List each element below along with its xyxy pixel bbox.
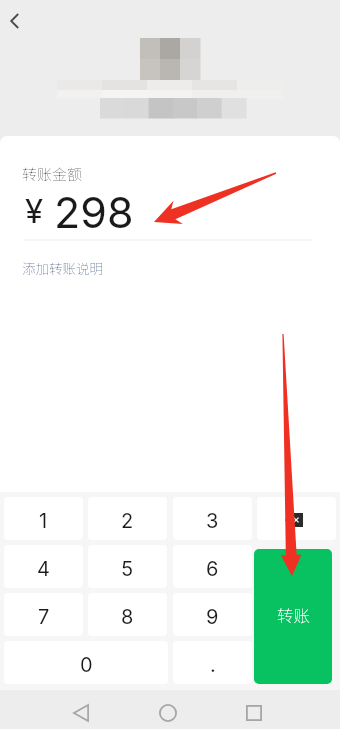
button[interactable]: 7 (4, 593, 83, 636)
staticText: 0 (80, 653, 93, 677)
button[interactable]: Recent apps (234, 695, 274, 729)
staticText: 3 (206, 509, 219, 533)
staticText: 298 (54, 186, 134, 238)
staticText: 1 (39, 509, 48, 533)
button[interactable]: 0 (4, 641, 168, 684)
staticText: 7 (38, 605, 50, 629)
button[interactable]: 添加转账说明 (22, 258, 103, 278)
button[interactable]: Backspace (257, 497, 336, 540)
button[interactable]: 5 (88, 545, 167, 588)
staticText: 转账 (277, 603, 310, 627)
button[interactable]: 3 (173, 497, 252, 540)
button[interactable]: Back (0, 4, 34, 38)
staticText: 6 (206, 557, 219, 581)
button[interactable]: Home (148, 695, 188, 729)
staticText: 2 (121, 509, 134, 533)
staticText: 添加转账说明 (22, 258, 103, 278)
button[interactable]: . (173, 641, 252, 684)
button[interactable]: Back (61, 695, 101, 729)
button[interactable]: 转账 (254, 549, 332, 684)
staticText: 4 (37, 557, 50, 581)
staticText: 8 (121, 605, 134, 629)
staticText: 5 (121, 557, 134, 581)
button[interactable]: 9 (173, 593, 252, 636)
staticText: . (210, 653, 216, 677)
button[interactable]: 6 (173, 545, 252, 588)
staticText: 转账金额 (22, 163, 83, 185)
button[interactable]: 8 (88, 593, 167, 636)
button[interactable]: 4 (4, 545, 83, 588)
button[interactable]: 1 (4, 497, 83, 540)
staticText: ¥ (25, 191, 44, 231)
staticText: 9 (206, 605, 219, 629)
button[interactable]: 2 (88, 497, 167, 540)
